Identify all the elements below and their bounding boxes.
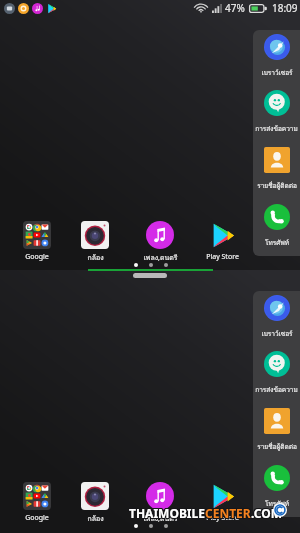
button[interactable]: รายชื่อผู้ติดต่อ — [253, 146, 300, 191]
staticText: การส่งข้อความ — [255, 124, 298, 134]
staticText: กล้อง — [87, 252, 104, 263]
other: การส่งข้อความ — [264, 90, 290, 116]
staticText: THAIMOBILECENTER.COM — [130, 506, 283, 522]
staticText: THAIMOBILE — [129, 505, 205, 521]
button[interactable]: การส่งข้อความ — [253, 350, 300, 395]
staticText: โทรศัพท์ — [265, 238, 289, 248]
staticText: รายชื่อผู้ติดต่อ — [257, 181, 297, 191]
button[interactable]: กล้อง — [68, 480, 122, 522]
staticText: Play Store — [206, 252, 239, 262]
other: เบราว์เซอร์ — [264, 295, 290, 321]
staticText: THAIMOBILECENTER.COM — [128, 505, 281, 521]
staticText: เพลง,ดนตรี — [143, 513, 178, 524]
staticText: CENTER — [205, 505, 251, 521]
staticText: กล้อง — [87, 513, 104, 524]
staticText: เบราว์เซอร์ — [261, 68, 293, 78]
staticText: โทรศัพท์ — [265, 499, 289, 509]
button[interactable]: เพลง,ดนตรี — [133, 480, 187, 522]
staticText: การส่งข้อความ — [255, 385, 298, 395]
other: โทรศัพท์ — [264, 465, 290, 491]
other: โทรศัพท์ — [264, 204, 290, 230]
staticText: เบราว์เซอร์ — [261, 329, 293, 339]
button[interactable]: กล้อง — [68, 219, 122, 261]
other: เบราว์เซอร์ — [264, 34, 290, 60]
staticText: Play Store — [206, 513, 239, 523]
staticText: 18:09 — [272, 1, 298, 15]
staticText: THAIMOBILECENTER.COM — [128, 504, 281, 520]
button[interactable]: Play Store — [195, 480, 249, 522]
button[interactable]: เพลง,ดนตรี — [133, 219, 187, 261]
staticText: Google — [25, 252, 49, 262]
button[interactable]: Google — [10, 480, 64, 522]
button[interactable]: การส่งข้อความ — [253, 89, 300, 134]
staticText: THAIMOBILECENTER.COM — [128, 506, 281, 522]
staticText: THAIMOBILECENTER.COM — [129, 506, 282, 522]
staticText: รายชื่อผู้ติดต่อ — [257, 442, 297, 452]
staticText: THAIMOBILECENTER.COM — [129, 504, 282, 520]
staticText: THAIMOBILECENTER.COM — [130, 504, 283, 520]
button[interactable]: โทรศัพท์ — [253, 464, 300, 509]
button[interactable]: Play Store — [195, 219, 249, 261]
other: การส่งข้อความ — [264, 351, 290, 377]
button[interactable]: เบราว์เซอร์ — [253, 33, 300, 78]
button[interactable]: โทรศัพท์ — [253, 203, 300, 248]
staticText: 47% — [225, 1, 245, 15]
button[interactable]: เบราว์เซอร์ — [253, 294, 300, 339]
staticText: Google — [25, 513, 49, 523]
button[interactable]: Google — [10, 219, 64, 261]
button[interactable]: รายชื่อผู้ติดต่อ — [253, 407, 300, 452]
staticText: .COM — [251, 505, 283, 521]
staticText: เพลง,ดนตรี — [143, 252, 178, 263]
other: รายชื่อผู้ติดต่อ — [264, 147, 290, 173]
other: รายชื่อผู้ติดต่อ — [264, 408, 290, 434]
staticText: THAIMOBILECENTER.COM — [130, 505, 283, 521]
